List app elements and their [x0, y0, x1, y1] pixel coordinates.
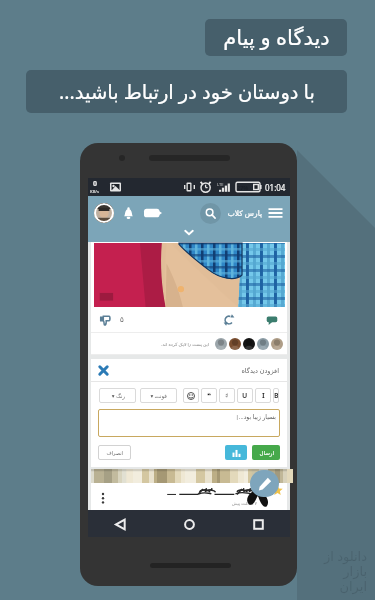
- button[interactable]: Emoji: [183, 388, 199, 403]
- staticText: KB/s: [90, 189, 99, 194]
- button[interactable]: Comment: [266, 314, 278, 326]
- button[interactable]: B: [273, 388, 279, 403]
- button[interactable]: ارسال: [252, 445, 280, 460]
- button[interactable]: Notifications: [122, 207, 135, 220]
- staticText: دانلود از بازار ایران: [323, 547, 367, 594]
- staticText: این پست را لایک کرده اند.: [161, 341, 209, 347]
- staticText: بسیار زیبا بود...|: [235, 413, 276, 421]
- button[interactable]: Back: [110, 514, 130, 534]
- staticText: I: [262, 391, 265, 401]
- button[interactable]: Share: [223, 314, 235, 326]
- button[interactable]: با دوستان خود در ارتباط باشید...: [26, 70, 347, 113]
- staticText: انصراف: [106, 450, 123, 456]
- button[interactable]: Write post: [250, 470, 279, 497]
- staticText: ❝: [207, 392, 212, 400]
- button[interactable]: ❝: [201, 388, 217, 403]
- staticText: رنگ ▾: [111, 392, 125, 399]
- button[interactable]: Attach file: [225, 445, 247, 460]
- button[interactable]: More options: [98, 492, 108, 502]
- button[interactable]: فونت ▾: [140, 388, 177, 403]
- button[interactable]: Recents: [248, 514, 268, 534]
- button[interactable]: Close: [98, 365, 109, 376]
- staticText: U: [242, 391, 248, 401]
- staticText: ارسال: [259, 450, 274, 456]
- staticText: دیدگاه و پیام: [223, 23, 330, 52]
- staticText: ۷ ساعت پیش: [231, 500, 257, 506]
- staticText: LTE: [217, 182, 224, 187]
- button[interactable]: انصراف: [98, 445, 131, 460]
- staticText: B: [274, 391, 279, 401]
- staticText: فونت ▾: [150, 392, 167, 399]
- staticText: پارس کلاب: [227, 208, 262, 218]
- button[interactable]: بسیار زیبا بود...|: [98, 409, 280, 437]
- button[interactable]: I: [255, 388, 271, 403]
- staticText: ♯: [225, 392, 229, 400]
- staticText: با دوستان خود در ارتباط باشید...: [59, 78, 315, 105]
- button[interactable]: Home: [179, 514, 199, 534]
- staticText: 0: [93, 179, 98, 189]
- button[interactable]: Search: [200, 203, 221, 224]
- staticText: 01:04: [265, 182, 286, 193]
- button[interactable]: Menu: [268, 207, 283, 219]
- staticText: افزودن دیدگاه: [241, 366, 279, 375]
- button[interactable]: ♯: [219, 388, 235, 403]
- button[interactable]: Like: [99, 314, 111, 326]
- button[interactable]: Profile: [94, 203, 114, 223]
- button[interactable]: Messages: [144, 207, 162, 219]
- button[interactable]: U: [237, 388, 253, 403]
- button[interactable]: رنگ ▾: [99, 388, 136, 403]
- staticText: ۵: [120, 316, 124, 324]
- button[interactable]: دیدگاه و پیام: [205, 19, 347, 56]
